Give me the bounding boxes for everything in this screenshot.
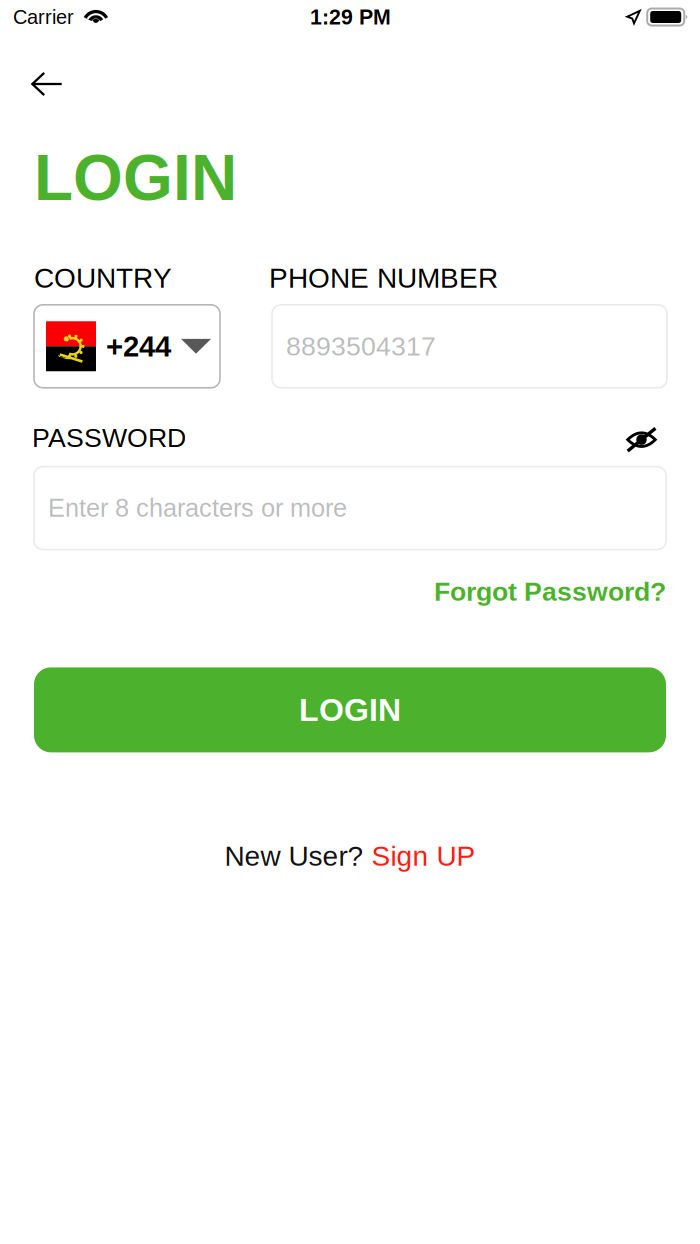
staticText: PASSWORD xyxy=(32,423,186,453)
staticText: COUNTRY xyxy=(34,262,172,294)
button[interactable]: Forgot Password? xyxy=(434,577,666,606)
button[interactable]: New User? xyxy=(224,840,475,872)
button[interactable]: Back xyxy=(0,59,83,109)
staticText: LOGIN xyxy=(299,692,401,728)
staticText: 1:29 PM xyxy=(310,5,391,29)
button[interactable]: LOGIN xyxy=(34,667,666,752)
staticText: 8893504317 xyxy=(286,331,436,361)
button[interactable]: Country code, Angola +244 xyxy=(34,305,220,388)
button[interactable]: Enter 8 characters or more xyxy=(34,467,666,550)
staticText: PHONE NUMBER xyxy=(269,262,498,294)
button[interactable]: Show password xyxy=(614,426,657,450)
staticText: New User? xyxy=(224,840,371,872)
button[interactable]: 8893504317 xyxy=(272,305,667,388)
staticText: Enter 8 characters or more xyxy=(48,494,347,522)
staticText: +244 xyxy=(106,330,171,363)
staticText: Sign UP xyxy=(371,840,475,872)
staticText: Forgot Password? xyxy=(434,577,666,606)
staticText: LOGIN xyxy=(34,142,237,213)
staticText: Carrier xyxy=(13,6,74,28)
